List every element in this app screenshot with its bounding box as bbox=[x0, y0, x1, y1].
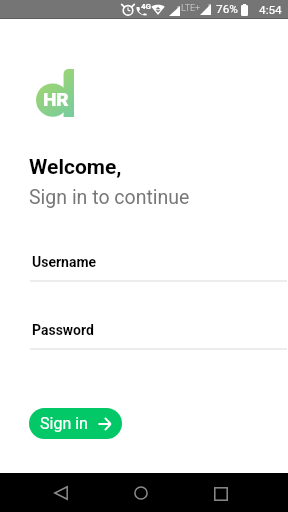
button[interactable]: Password bbox=[30, 313, 287, 350]
staticText: LTE+ bbox=[181, 3, 201, 14]
button[interactable]: Back bbox=[54, 486, 68, 500]
button[interactable]: Sign in bbox=[29, 408, 122, 439]
staticText: Sign in to continue bbox=[29, 186, 190, 209]
staticText: Password bbox=[32, 322, 94, 338]
staticText: Username bbox=[32, 254, 97, 270]
button[interactable]: Home bbox=[134, 486, 148, 500]
other: dHR logo bbox=[36, 69, 74, 117]
staticText: 4G bbox=[141, 2, 152, 11]
staticText: Sign in bbox=[40, 414, 88, 433]
button[interactable]: Recent apps bbox=[214, 487, 228, 501]
staticText: HR bbox=[43, 88, 69, 110]
button[interactable]: Username bbox=[30, 245, 287, 282]
staticText: 4:54 bbox=[259, 3, 282, 17]
staticText: 76% bbox=[216, 2, 238, 16]
staticText: Welcome, bbox=[29, 155, 122, 180]
